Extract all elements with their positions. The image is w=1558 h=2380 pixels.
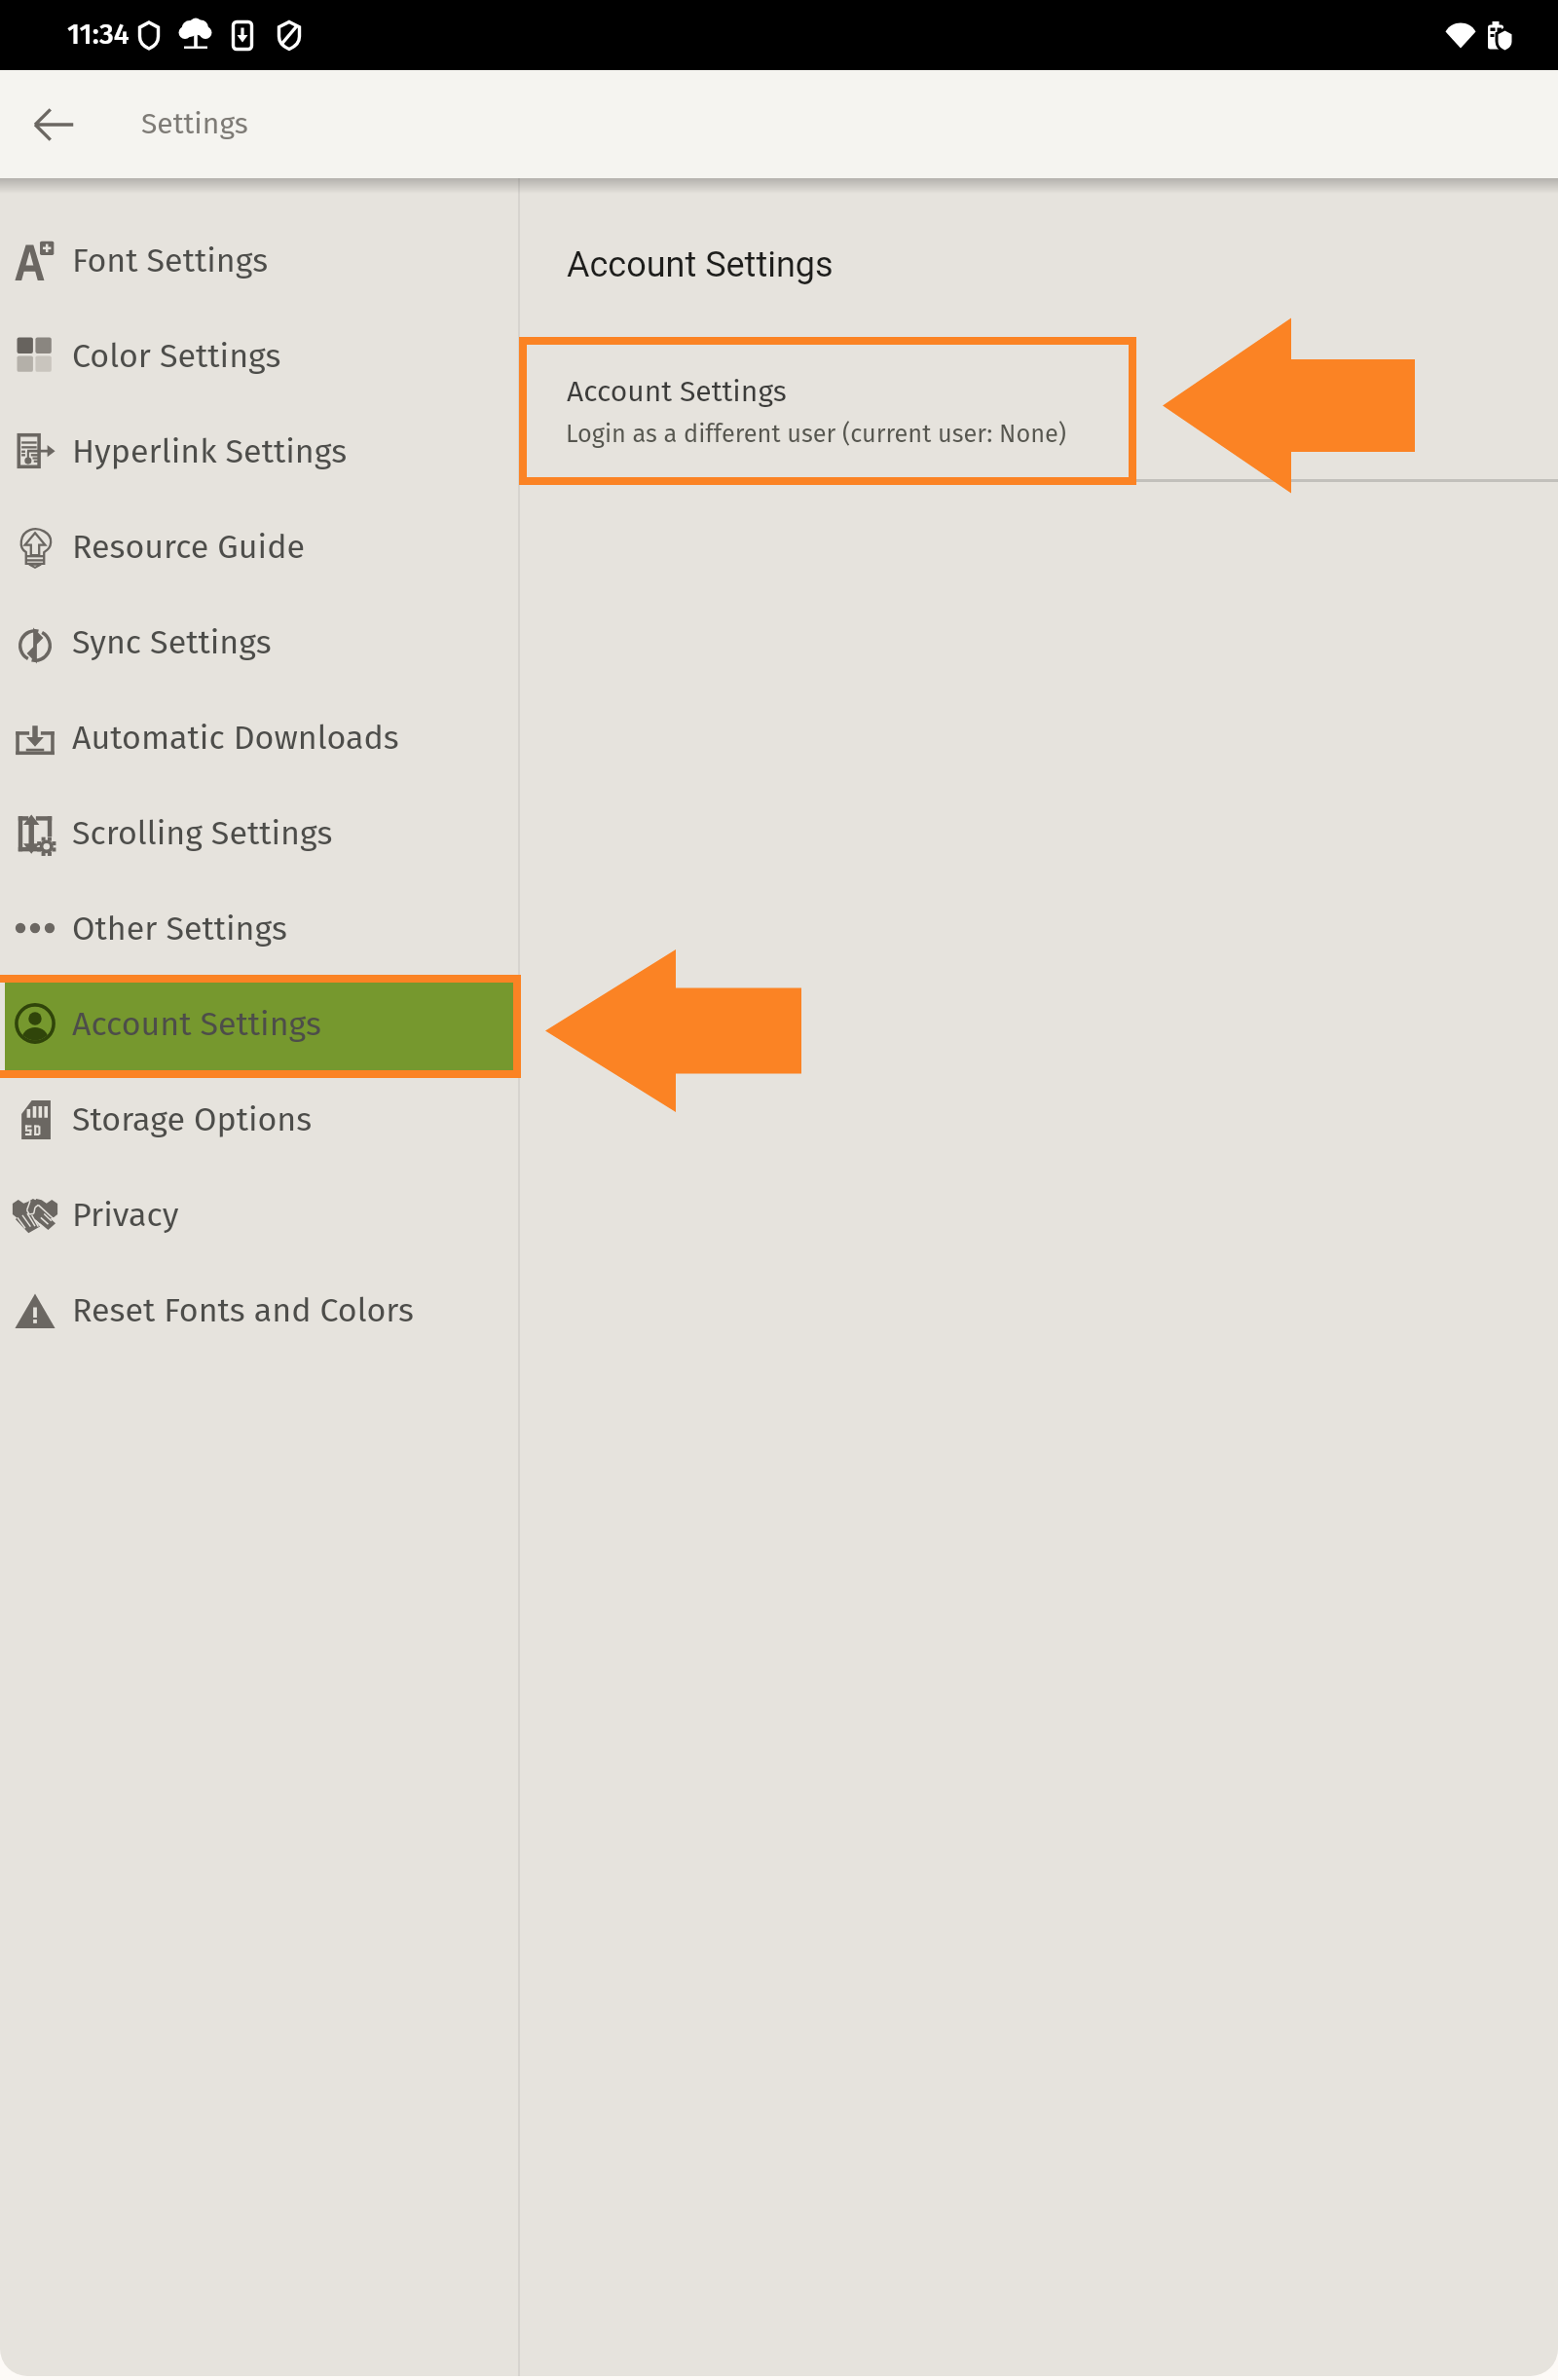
button[interactable]: Storage Options bbox=[0, 1072, 518, 1166]
button[interactable]: Color Settings bbox=[0, 309, 518, 402]
staticText: Account Settings bbox=[567, 374, 787, 409]
staticText: Hyperlink Settings bbox=[72, 431, 348, 471]
button[interactable]: Sync Settings bbox=[0, 595, 518, 688]
button[interactable]: Other Settings bbox=[0, 881, 518, 975]
staticText: Other Settings bbox=[72, 909, 287, 948]
button[interactable]: Font Settings bbox=[0, 213, 518, 307]
staticText: Account Settings bbox=[72, 1004, 321, 1044]
staticText: Scrolling Settings bbox=[72, 813, 333, 853]
button[interactable]: Scrolling Settings bbox=[0, 786, 518, 879]
staticText: Privacy bbox=[72, 1195, 179, 1235]
staticText: 11:34 bbox=[67, 18, 130, 52]
staticText: Automatic Downloads bbox=[72, 718, 399, 758]
button[interactable]: Account Settings bbox=[520, 337, 1558, 485]
staticText: Account Settings bbox=[567, 244, 834, 285]
staticText: Storage Options bbox=[72, 1099, 313, 1139]
button[interactable]: Privacy bbox=[0, 1168, 518, 1261]
staticText: Sync Settings bbox=[72, 622, 272, 662]
staticText: Font Settings bbox=[72, 241, 269, 280]
staticText: Color Settings bbox=[72, 336, 281, 376]
staticText: Login as a different user (current user:… bbox=[566, 419, 1066, 448]
button[interactable]: Automatic Downloads bbox=[0, 690, 518, 784]
staticText: Settings bbox=[141, 106, 248, 141]
button[interactable]: Back bbox=[14, 85, 93, 165]
staticText: Resource Guide bbox=[72, 527, 306, 567]
button[interactable]: Reset Fonts and Colors bbox=[0, 1263, 518, 1357]
staticText: Reset Fonts and Colors bbox=[72, 1290, 414, 1330]
button[interactable]: Account Settings bbox=[5, 977, 518, 1070]
button[interactable]: Resource Guide bbox=[0, 500, 518, 593]
button[interactable]: Hyperlink Settings bbox=[0, 404, 518, 498]
